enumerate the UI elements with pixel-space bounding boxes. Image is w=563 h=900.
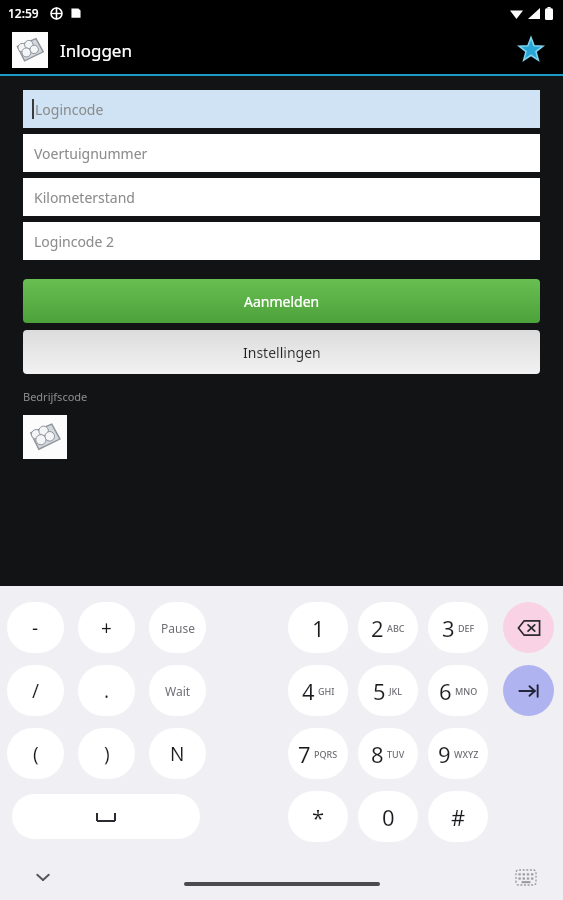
button[interactable]: ( [7,728,64,779]
button[interactable]: Aanmelden [23,279,540,323]
staticText: Bedrijfscode [23,389,88,404]
button[interactable]: N [149,728,206,779]
staticText: - [32,615,39,641]
button[interactable]: + [78,602,135,653]
staticText: GHI [318,685,335,697]
staticText: Logincode 2 [34,232,115,251]
button[interactable]: Wait [149,665,206,716]
button[interactable]: 7 [288,728,348,779]
staticText: 2 [371,613,384,643]
staticText: 6 [439,676,452,706]
button[interactable]: Toetsenbord verbergen [28,862,58,892]
button[interactable]: 3 [428,602,488,653]
button[interactable]: / [7,665,64,716]
button[interactable]: # [428,791,488,842]
staticText: 1 [312,613,325,643]
staticText: TUV [387,748,405,760]
button[interactable]: 1 [288,602,348,653]
button[interactable]: Toetsenbord wisselen [513,864,539,890]
staticText: / [32,678,40,704]
staticText: WXYZ [454,748,479,760]
button[interactable]: Logincode [23,90,540,128]
button[interactable]: Backspace [503,602,554,653]
staticText: Aanmelden [244,292,320,311]
button[interactable]: 2 [358,602,418,653]
staticText: Voertuignummer [34,144,148,163]
button[interactable]: * [288,791,348,842]
staticText: ) [104,741,110,767]
staticText: JKL [389,685,403,697]
staticText: PQRS [314,748,338,760]
staticText: DEF [458,622,475,634]
button[interactable]: 6 [428,665,488,716]
button[interactable]: Logincode 2 [23,222,540,260]
staticText: 8 [371,739,384,769]
button[interactable]: . [78,665,135,716]
button[interactable] [23,415,67,459]
button[interactable]: Spatie [12,794,200,839]
button[interactable]: Pause [149,602,206,653]
staticText: 3 [442,613,455,643]
staticText: Kilometerstand [34,188,135,207]
staticText: Pause [161,620,195,636]
staticText: Inloggen [60,39,132,62]
staticText: 4 [302,676,315,706]
staticText: * [312,802,325,832]
staticText: ( [33,741,39,767]
button[interactable]: Enter [503,665,554,716]
staticText: 0 [382,802,395,832]
staticText: + [101,615,112,641]
button[interactable]: Kilometerstand [23,178,540,216]
staticText: ABC [387,622,405,634]
staticText: 12:59 [8,5,39,21]
staticText: MNO [455,685,478,697]
staticText: 7 [298,739,311,769]
staticText: Logincode [35,100,104,119]
button[interactable]: 5 [358,665,418,716]
button[interactable]: - [7,602,64,653]
staticText: Instellingen [243,343,321,362]
staticText: N [170,741,185,767]
button[interactable]: Voertuignummer [23,134,540,172]
staticText: 9 [438,739,451,769]
button[interactable]: 8 [358,728,418,779]
staticText: . [104,678,110,704]
button[interactable]: 0 [358,791,418,842]
button[interactable]: 9 [428,728,488,779]
staticText: Wait [165,683,191,699]
staticText: 5 [373,676,386,706]
button[interactable]: Favoriet [511,30,551,70]
button[interactable]: ) [78,728,135,779]
button[interactable]: 4 [288,665,348,716]
staticText: # [451,802,466,832]
button[interactable]: Instellingen [23,330,540,374]
